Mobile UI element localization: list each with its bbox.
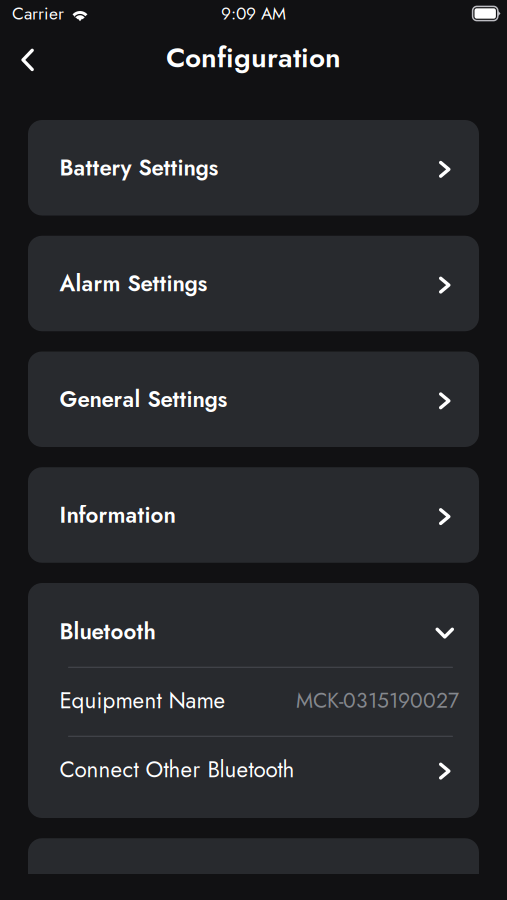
- staticText: Bluetooth: [59, 615, 155, 648]
- button[interactable]: Back: [5, 34, 49, 80]
- staticText: Information: [59, 499, 175, 531]
- staticText: Equipment Name: [59, 684, 225, 717]
- staticText: 9:09 AM: [221, 1, 286, 26]
- staticText: Configuration: [166, 37, 341, 78]
- staticText: MCK-0315190027: [296, 685, 459, 716]
- button[interactable]: Alarm Settings: [28, 236, 479, 331]
- button[interactable]: Connect Other Bluetooth: [28, 735, 479, 804]
- staticText: Carrier: [12, 1, 64, 26]
- button[interactable]: General Settings: [28, 351, 479, 447]
- button[interactable]: Bluetooth: [28, 597, 479, 666]
- button[interactable]: Information: [28, 467, 479, 563]
- staticText: Alarm Settings: [59, 267, 207, 300]
- button[interactable]: Device List: [28, 838, 479, 900]
- button[interactable]: Battery Settings: [28, 120, 479, 215]
- staticText: Device List: [59, 870, 168, 900]
- staticText: General Settings: [59, 383, 227, 415]
- staticText: Connect Other Bluetooth: [59, 753, 294, 786]
- staticText: Battery Settings: [59, 152, 218, 184]
